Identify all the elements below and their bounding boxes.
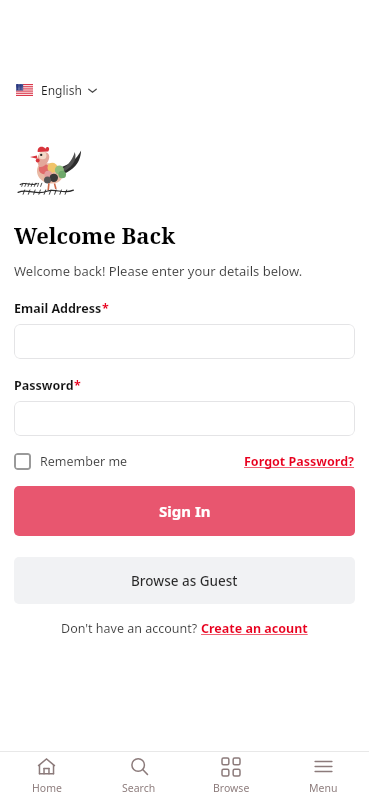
button[interactable]: Browse	[185, 752, 277, 800]
staticText: Welcome Back	[14, 220, 176, 250]
button[interactable]: Menu	[277, 752, 369, 800]
staticText: Home	[32, 781, 62, 795]
staticText: Browse as Guest	[131, 572, 238, 590]
other: Search	[130, 757, 149, 776]
other: Home	[37, 757, 56, 776]
button[interactable]: Remember me	[14, 453, 128, 470]
button[interactable]	[14, 324, 355, 359]
staticText: Forgot Password?	[244, 453, 355, 470]
staticText: Sign In	[159, 501, 211, 521]
button[interactable]: Sign In	[14, 486, 355, 536]
other: Browse	[222, 758, 240, 776]
staticText: Search	[122, 781, 156, 795]
staticText: Browse	[213, 781, 250, 795]
button[interactable]: Browse as Guest	[14, 557, 355, 604]
staticText: Welcome back! Please enter your details …	[14, 262, 303, 280]
staticText: *	[74, 377, 81, 394]
button[interactable]: Create an acount	[201, 620, 308, 637]
button[interactable]: Forgot Password?	[244, 453, 355, 470]
staticText: Menu	[309, 781, 338, 795]
staticText: *	[102, 300, 109, 317]
staticText: Don't have an account?	[61, 620, 201, 637]
button[interactable]	[14, 401, 355, 436]
button[interactable]: Search	[93, 752, 185, 800]
staticText: Email Address	[14, 300, 102, 317]
button[interactable]: English	[14, 78, 99, 102]
staticText: Create an acount	[201, 620, 308, 637]
staticText: Remember me	[40, 453, 128, 470]
other: Menu	[314, 757, 333, 776]
button[interactable]: Home	[0, 752, 93, 800]
staticText: Password	[14, 377, 74, 394]
staticText: English	[41, 82, 82, 98]
